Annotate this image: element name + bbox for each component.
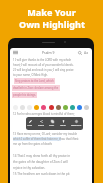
button[interactable]: Menu bbox=[13, 51, 18, 54]
button[interactable]: Share bbox=[38, 120, 44, 127]
button[interactable] bbox=[84, 105, 89, 110]
staticText: heart; I will recount all of your wonder… bbox=[13, 63, 74, 68]
button[interactable] bbox=[41, 105, 46, 110]
button[interactable]: Reference bbox=[71, 120, 82, 127]
button[interactable] bbox=[20, 105, 25, 110]
staticText: which I suffer of them that hate me, tho… bbox=[13, 137, 79, 141]
staticText: to your name, O Most High. bbox=[13, 73, 48, 78]
button[interactable] bbox=[27, 105, 32, 110]
staticText: Share bbox=[38, 124, 44, 127]
staticText: Make Your bbox=[27, 6, 76, 18]
staticText: me up from the gates of death: bbox=[13, 142, 53, 146]
staticText: dwelleth in Zion: declare among the bbox=[13, 86, 59, 90]
button[interactable]: Verse bbox=[60, 120, 66, 127]
staticText: Copy bbox=[49, 124, 55, 127]
staticText: rejoice in thy salvation. bbox=[13, 166, 46, 172]
staticText: Note bbox=[27, 124, 33, 127]
staticText: Sing praises to the Lord, which bbox=[15, 79, 54, 83]
button[interactable] bbox=[77, 105, 82, 110]
staticText: Own Highlight bbox=[19, 18, 85, 30]
staticText: 2 I will be glad and exult in you; I wil… bbox=[13, 68, 74, 73]
staticText: 14 That I may shew forth all thy praise … bbox=[13, 154, 71, 160]
button[interactable] bbox=[56, 105, 61, 110]
button[interactable] bbox=[70, 105, 75, 110]
staticText: 13 Have mercy on me, O Lord; consider my… bbox=[13, 132, 77, 137]
staticText: Reference bbox=[71, 124, 82, 127]
staticText: 1 I will give thanks to the LORD with my… bbox=[13, 58, 72, 63]
button[interactable] bbox=[13, 105, 18, 110]
button[interactable] bbox=[34, 105, 39, 110]
button[interactable]: Copy bbox=[49, 120, 55, 127]
button[interactable]: Note bbox=[27, 120, 33, 127]
staticText: 12 For he who avenges blood is mindful o… bbox=[13, 112, 75, 117]
button[interactable] bbox=[49, 105, 54, 110]
staticText: 15 The heathen are sunk down in the pit bbox=[13, 172, 70, 178]
staticText: Aa bbox=[84, 50, 89, 55]
staticText: the gates of the daughter of Zion: I wil… bbox=[13, 160, 68, 166]
button[interactable]: Search bbox=[78, 51, 82, 55]
staticText: Verse bbox=[60, 124, 66, 127]
staticText: people his doings. bbox=[13, 93, 36, 97]
button[interactable] bbox=[63, 105, 68, 110]
staticText: Psalm 9 bbox=[42, 50, 55, 55]
